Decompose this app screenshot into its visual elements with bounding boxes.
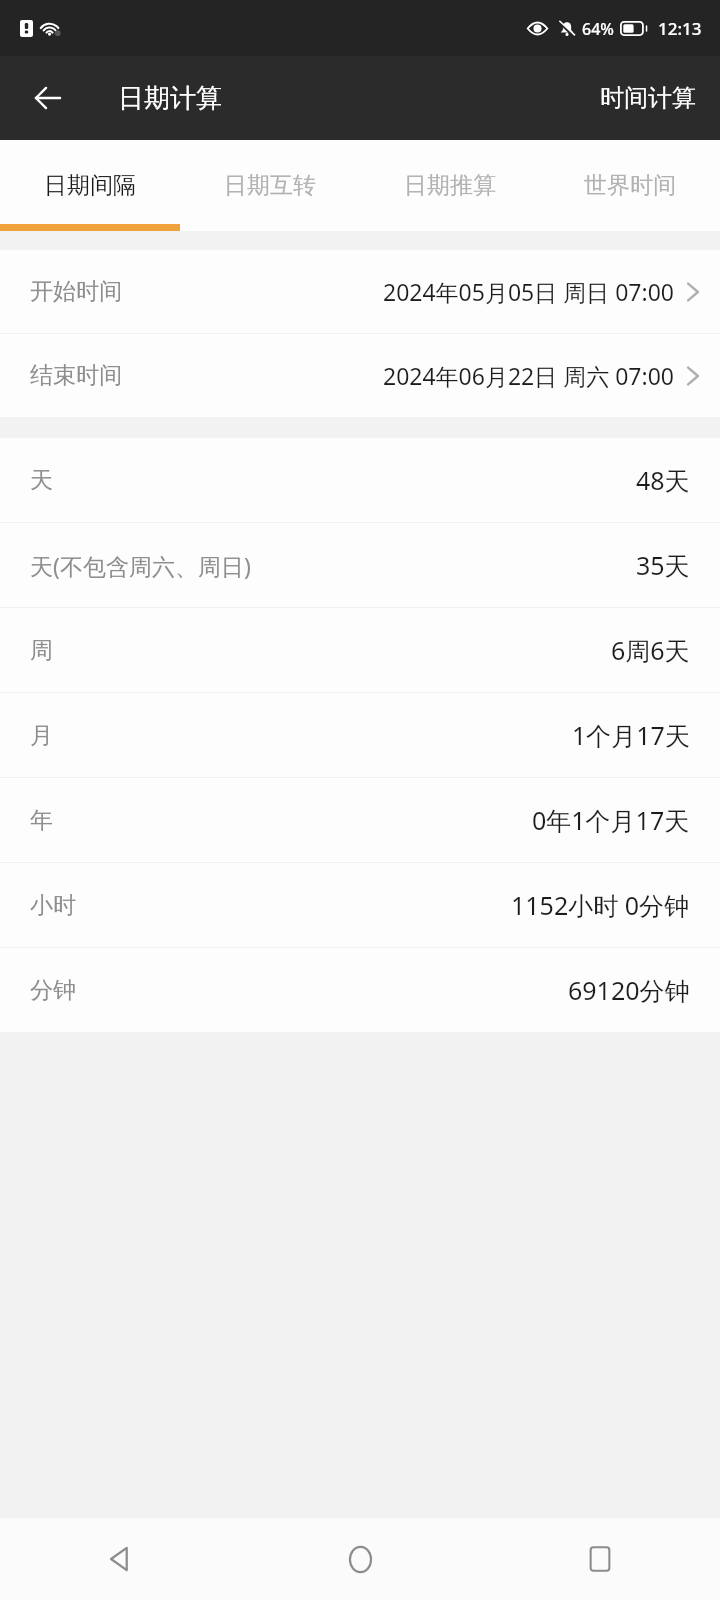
button[interactable]: 天(不包含周六、周日) <box>0 523 720 607</box>
staticText: 2024年06月22日 周六 07:00 <box>383 360 674 391</box>
staticText: 2024年05月05日 周日 07:00 <box>383 276 674 307</box>
button[interactable]: 开始时间 <box>0 250 720 333</box>
button[interactable]: 年 <box>0 778 720 862</box>
staticText: 日期推算 <box>404 171 496 200</box>
staticText: 天(不包含周六、周日) <box>30 550 251 581</box>
staticText: 0年1个月17天 <box>532 803 690 837</box>
staticText: 1152小时 0分钟 <box>511 888 690 922</box>
staticText: 6周6天 <box>611 633 690 667</box>
button[interactable]: Back <box>20 70 76 126</box>
button[interactable]: 月 <box>0 693 720 777</box>
staticText: 12:13 <box>658 17 702 40</box>
staticText: 小时 <box>30 891 76 920</box>
button[interactable]: 结束时间 <box>0 334 720 417</box>
staticText: 48天 <box>636 463 690 497</box>
staticText: 分钟 <box>30 976 76 1005</box>
button[interactable]: Back <box>0 1518 240 1600</box>
staticText: 周 <box>30 636 53 665</box>
button[interactable]: 时间计算 <box>588 73 708 123</box>
button[interactable]: 小时 <box>0 863 720 947</box>
staticText: 开始时间 <box>30 277 122 306</box>
button[interactable]: 日期推算 <box>360 140 540 231</box>
staticText: 天 <box>30 466 53 495</box>
staticText: 64% <box>582 18 614 40</box>
button[interactable]: 分钟 <box>0 948 720 1032</box>
staticText: 结束时间 <box>30 361 122 390</box>
staticText: 时间计算 <box>600 83 696 113</box>
button[interactable]: Recent apps <box>480 1518 720 1600</box>
button[interactable]: Home <box>240 1518 480 1600</box>
staticText: 69120分钟 <box>568 973 690 1007</box>
button[interactable]: 周 <box>0 608 720 692</box>
staticText: 日期计算 <box>118 82 222 115</box>
button[interactable]: 世界时间 <box>540 140 720 231</box>
staticText: 世界时间 <box>584 171 676 200</box>
button[interactable]: 日期间隔 <box>0 140 180 231</box>
staticText: 日期间隔 <box>44 171 136 200</box>
staticText: 35天 <box>636 548 690 582</box>
staticText: 日期互转 <box>224 171 316 200</box>
staticText: 1个月17天 <box>572 718 690 752</box>
button[interactable]: 天 <box>0 438 720 522</box>
staticText: 月 <box>30 721 53 750</box>
staticText: 年 <box>30 806 53 835</box>
button[interactable]: 日期互转 <box>180 140 360 231</box>
